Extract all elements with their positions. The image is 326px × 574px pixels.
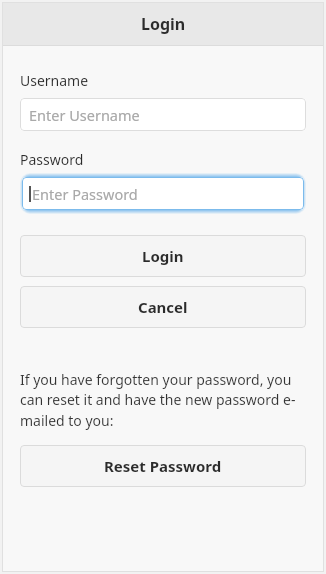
staticText: Enter Password — [32, 184, 138, 204]
button[interactable]: Reset Password — [20, 445, 306, 487]
staticText: Cancel — [138, 297, 188, 317]
other: Reset Password — [20, 445, 306, 487]
button[interactable]: Enter Username — [20, 98, 306, 131]
button[interactable]: Login — [20, 235, 306, 277]
button[interactable]: Cancel — [20, 286, 306, 328]
button[interactable]: Enter Password — [22, 177, 304, 210]
staticText: Login — [142, 246, 184, 266]
staticText: Login — [141, 13, 186, 35]
staticText: Reset Password — [104, 456, 222, 476]
staticText: Password — [20, 150, 84, 169]
staticText: Enter Username — [29, 105, 140, 125]
staticText: Username — [20, 71, 89, 90]
staticText: If you have forgotten your password, you… — [20, 370, 306, 431]
